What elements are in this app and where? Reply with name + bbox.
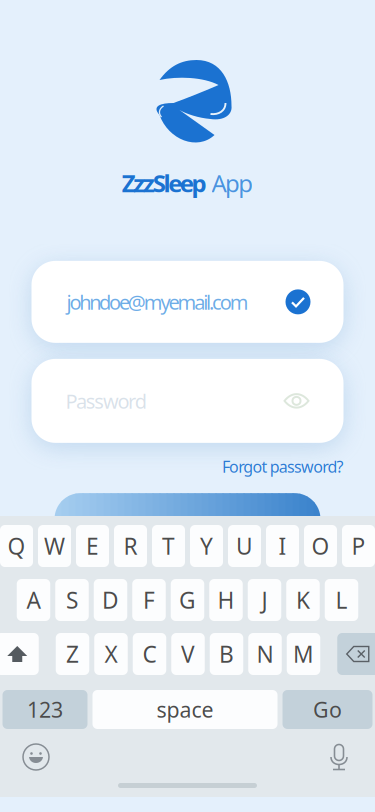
staticText: O	[311, 531, 329, 561]
staticText: X	[104, 639, 117, 669]
button[interactable]: T	[152, 525, 185, 567]
staticText: Forgot password?	[222, 456, 343, 477]
button[interactable]: Dictation	[325, 743, 353, 771]
staticText: N	[256, 639, 273, 669]
button[interactable]: N	[248, 633, 282, 675]
staticText: Y	[200, 531, 213, 561]
button[interactable]: A	[17, 579, 50, 621]
button[interactable]: Z	[56, 633, 89, 675]
button[interactable]: J	[248, 579, 281, 621]
staticText: ZzzSleep	[122, 167, 206, 199]
staticText: W	[44, 531, 65, 561]
staticText: Go	[313, 695, 342, 724]
button[interactable]: E	[76, 525, 109, 567]
button[interactable]: W	[38, 525, 71, 567]
button[interactable]: Y	[190, 525, 223, 567]
staticText: P	[351, 531, 365, 561]
staticText: M	[293, 639, 314, 669]
button[interactable]: H	[209, 579, 243, 621]
staticText: U	[236, 531, 253, 561]
staticText: F	[143, 585, 155, 615]
button[interactable]: Go	[282, 690, 372, 729]
button[interactable]: Show password	[283, 392, 309, 410]
staticText: S	[66, 585, 78, 615]
staticText: B	[219, 639, 234, 669]
staticText: K	[296, 585, 310, 615]
button[interactable]: U	[228, 525, 261, 567]
staticText: L	[335, 585, 347, 615]
staticText: E	[86, 531, 99, 561]
button[interactable]: I	[266, 525, 299, 567]
staticText: 123	[27, 695, 63, 724]
staticText: R	[123, 531, 137, 561]
staticText: I	[278, 531, 286, 561]
button[interactable]: R	[114, 525, 147, 567]
button[interactable]: C	[133, 633, 166, 675]
staticText: johndoe@myemail.com	[66, 289, 249, 315]
staticText: H	[217, 585, 234, 615]
button[interactable]: X	[94, 633, 128, 675]
button[interactable]: Q	[0, 525, 33, 567]
button[interactable]: space	[92, 690, 277, 729]
button[interactable]: F	[132, 579, 166, 621]
staticText: T	[162, 531, 175, 561]
staticText: App	[212, 167, 253, 199]
button[interactable]: B	[210, 633, 243, 675]
button[interactable]: V	[171, 633, 205, 675]
staticText: space	[156, 695, 213, 724]
staticText: A	[26, 585, 40, 615]
button[interactable]: M	[287, 633, 320, 675]
button[interactable]: O	[304, 525, 337, 567]
staticText: G	[179, 585, 196, 615]
button[interactable]: P	[342, 525, 375, 567]
staticText: Q	[7, 531, 25, 561]
button[interactable]: Shift	[0, 633, 39, 675]
staticText: J	[261, 585, 267, 615]
button[interactable]: Delete	[337, 633, 375, 675]
button[interactable]: Forgot password?	[222, 456, 343, 477]
button[interactable]: 123	[2, 690, 87, 729]
staticText: D	[102, 585, 119, 615]
button[interactable]	[54, 493, 320, 545]
button[interactable]: D	[94, 579, 127, 621]
button[interactable]: K	[286, 579, 320, 621]
staticText: V	[181, 639, 195, 669]
staticText: C	[142, 639, 156, 669]
button[interactable]: G	[171, 579, 204, 621]
button[interactable]: L	[325, 579, 358, 621]
button[interactable]: S	[55, 579, 89, 621]
staticText: Z	[66, 639, 79, 669]
button[interactable]: Emoji	[22, 743, 50, 771]
staticText: Password	[65, 388, 147, 414]
